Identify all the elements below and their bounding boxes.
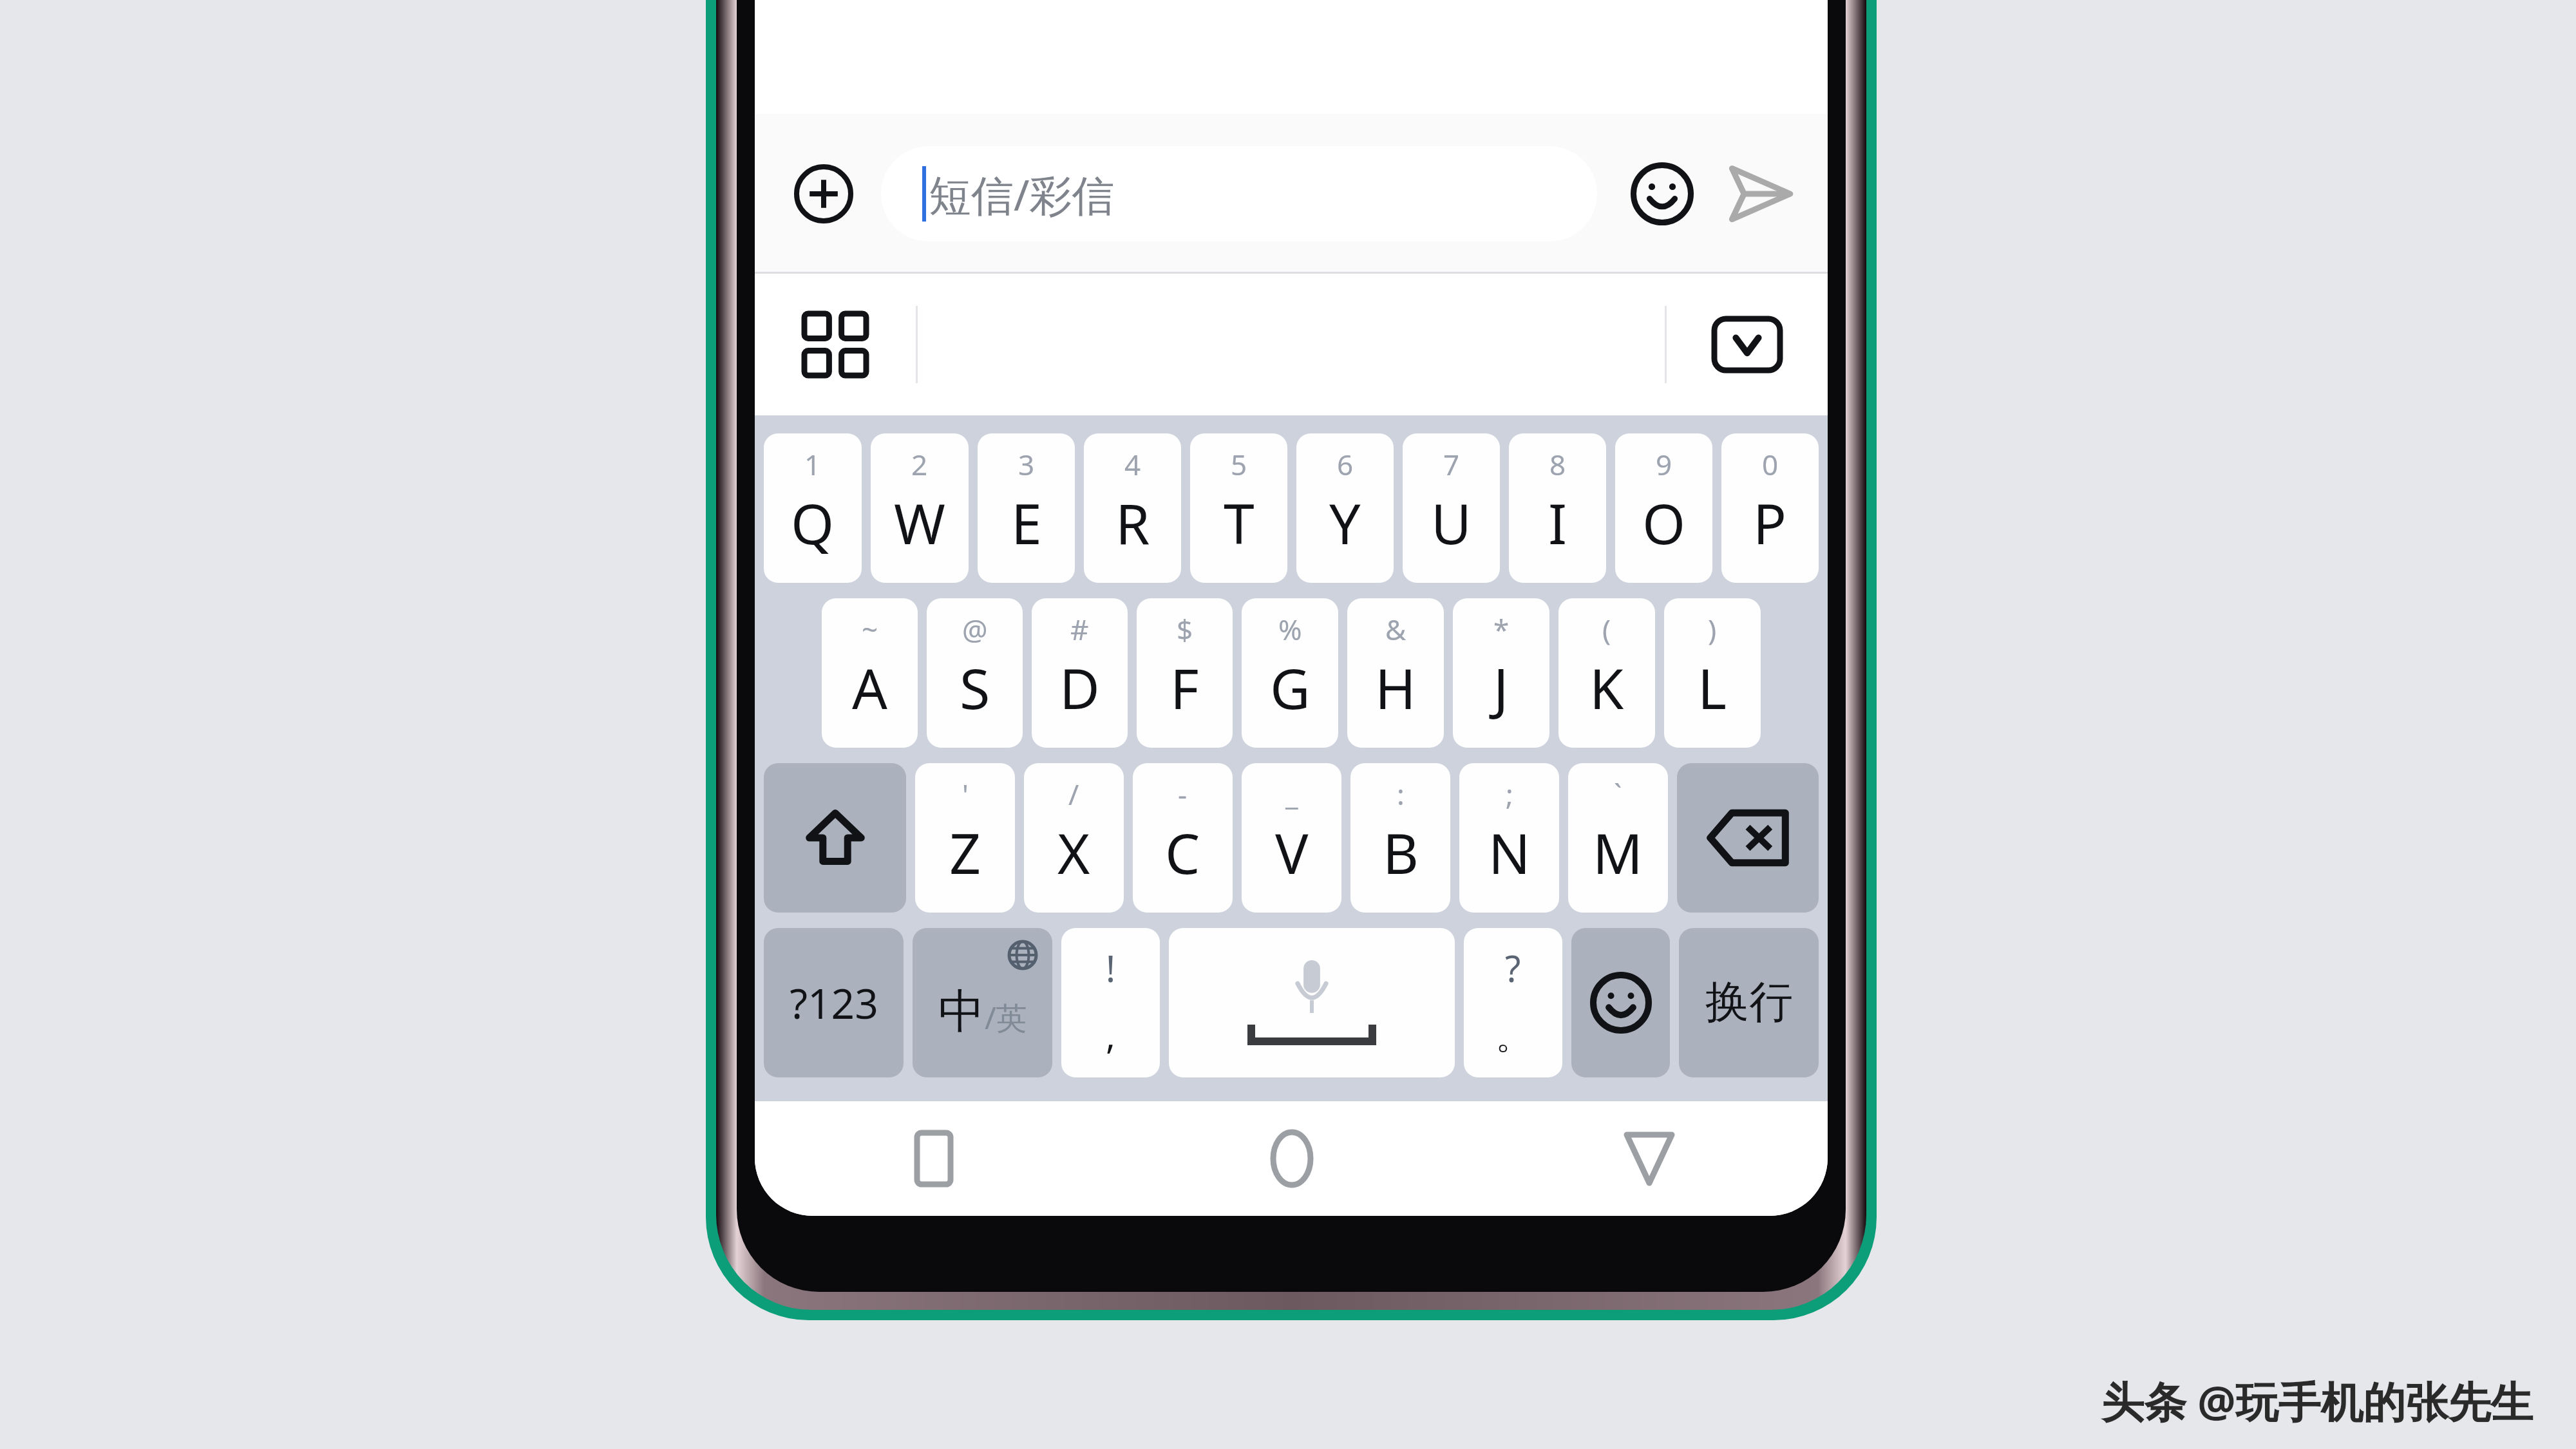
button[interactable]: - bbox=[1133, 763, 1233, 913]
button[interactable]: 7 bbox=[1403, 433, 1500, 583]
staticText: M bbox=[1593, 815, 1643, 890]
staticText: 0 bbox=[1762, 445, 1779, 484]
staticText: V bbox=[1275, 815, 1309, 890]
staticText: @ bbox=[962, 610, 988, 649]
button[interactable]: Hide keyboard bbox=[1667, 274, 1828, 415]
button[interactable]: : bbox=[1350, 763, 1450, 913]
staticText: * bbox=[1493, 610, 1510, 649]
button[interactable]: 2 bbox=[871, 433, 969, 583]
button[interactable]: 换行 bbox=[1679, 928, 1819, 1077]
button[interactable]: Send bbox=[1710, 146, 1807, 242]
staticText: /英 bbox=[985, 996, 1027, 1039]
staticText: T bbox=[1224, 485, 1255, 560]
staticText: 头条 @玩手机的张先生 bbox=[2101, 1372, 2533, 1430]
staticText: ( bbox=[1602, 610, 1611, 649]
button[interactable]: Attach bbox=[775, 146, 872, 242]
button[interactable]: 6 bbox=[1296, 433, 1394, 583]
staticText: 2 bbox=[911, 445, 928, 484]
button[interactable]: * bbox=[1453, 598, 1549, 748]
staticText: Z bbox=[949, 815, 981, 890]
button[interactable]: Backspace bbox=[1677, 763, 1819, 913]
staticText: P bbox=[1753, 485, 1787, 560]
button[interactable]: ?123 bbox=[764, 928, 904, 1077]
staticText: ?123 bbox=[790, 975, 878, 1031]
staticText: ` bbox=[1614, 775, 1622, 813]
button[interactable]: 4 bbox=[1084, 433, 1181, 583]
button[interactable]: _ bbox=[1242, 763, 1341, 913]
staticText: B bbox=[1383, 815, 1419, 890]
button[interactable]: ' bbox=[915, 763, 1015, 913]
staticText: 4 bbox=[1124, 445, 1141, 484]
button[interactable]: 短信/彩信 bbox=[881, 146, 1597, 241]
staticText: D bbox=[1059, 650, 1100, 725]
staticText: 3 bbox=[1018, 445, 1035, 484]
staticText: U bbox=[1431, 485, 1472, 560]
staticText: % bbox=[1278, 610, 1302, 649]
staticText: 换行 bbox=[1705, 975, 1793, 1030]
staticText: 中 bbox=[938, 983, 985, 1041]
button[interactable]: ? bbox=[1464, 928, 1562, 1077]
staticText: 8 bbox=[1549, 445, 1566, 484]
button[interactable]: & bbox=[1347, 598, 1444, 748]
staticText: L bbox=[1698, 650, 1727, 725]
button[interactable]: Home bbox=[1113, 1101, 1470, 1216]
staticText: _ bbox=[1285, 775, 1298, 813]
button[interactable]: Space bbox=[1169, 928, 1455, 1077]
staticText: F bbox=[1170, 650, 1199, 725]
staticText: - bbox=[1178, 775, 1188, 813]
staticText: W bbox=[894, 485, 945, 560]
staticText: R bbox=[1115, 485, 1150, 560]
button[interactable]: Shift bbox=[764, 763, 906, 913]
button[interactable]: Keyboard layouts bbox=[755, 274, 916, 415]
button[interactable]: / bbox=[1024, 763, 1124, 913]
button[interactable]: 8 bbox=[1509, 433, 1606, 583]
staticText: J bbox=[1493, 650, 1509, 725]
staticText: & bbox=[1385, 610, 1406, 649]
button[interactable]: 3 bbox=[978, 433, 1075, 583]
button[interactable]: # bbox=[1032, 598, 1128, 748]
staticText: 7 bbox=[1443, 445, 1460, 484]
staticText: S bbox=[960, 650, 990, 725]
button[interactable]: ~ bbox=[822, 598, 918, 748]
staticText: 1 bbox=[804, 445, 821, 484]
staticText: # bbox=[1070, 610, 1089, 649]
staticText: H bbox=[1375, 650, 1416, 725]
staticText: O bbox=[1642, 485, 1686, 560]
button[interactable]: $ bbox=[1137, 598, 1233, 748]
staticText: C bbox=[1165, 815, 1200, 890]
staticText: K bbox=[1589, 650, 1624, 725]
button[interactable]: Emoji bbox=[1614, 146, 1710, 242]
staticText: 9 bbox=[1656, 445, 1672, 484]
staticText: I bbox=[1548, 485, 1567, 560]
staticText: E bbox=[1011, 485, 1042, 560]
button[interactable]: Back bbox=[1470, 1101, 1828, 1216]
staticText: N bbox=[1488, 815, 1531, 890]
button[interactable]: ) bbox=[1664, 598, 1761, 748]
staticText: 短信/彩信 bbox=[929, 165, 1115, 223]
button[interactable]: 中 bbox=[913, 928, 1052, 1077]
button[interactable]: ! bbox=[1061, 928, 1160, 1077]
button[interactable]: ( bbox=[1558, 598, 1655, 748]
staticText: Y bbox=[1329, 485, 1361, 560]
staticText: G bbox=[1270, 650, 1311, 725]
staticText: ) bbox=[1708, 610, 1717, 649]
button[interactable]: ; bbox=[1459, 763, 1559, 913]
staticText: ~ bbox=[862, 610, 878, 649]
button[interactable]: 9 bbox=[1615, 433, 1712, 583]
button[interactable]: Emoji bbox=[1571, 928, 1670, 1077]
button[interactable]: Recent apps bbox=[755, 1101, 1113, 1216]
button[interactable]: 5 bbox=[1190, 433, 1287, 583]
staticText: Q bbox=[791, 485, 835, 560]
button[interactable]: 0 bbox=[1721, 433, 1819, 583]
staticText: ! bbox=[1106, 943, 1116, 992]
staticText: X bbox=[1057, 815, 1090, 890]
staticText: ' bbox=[962, 775, 969, 813]
staticText: ; bbox=[1506, 775, 1513, 813]
staticText: $ bbox=[1177, 610, 1193, 649]
button[interactable]: 1 bbox=[764, 433, 862, 583]
button[interactable]: % bbox=[1242, 598, 1338, 748]
button[interactable]: @ bbox=[927, 598, 1023, 748]
button[interactable]: ` bbox=[1568, 763, 1668, 913]
staticText: , bbox=[1106, 1010, 1116, 1059]
staticText: 5 bbox=[1231, 445, 1247, 484]
